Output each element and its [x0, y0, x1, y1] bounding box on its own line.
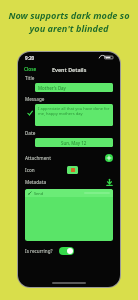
staticText: Sun, May 12 [61, 140, 87, 146]
staticText: you aren't blinded [5, 22, 133, 35]
button[interactable]: Send [25, 189, 113, 241]
staticText: Title [25, 75, 35, 81]
staticText: Mother's Day [38, 85, 66, 91]
staticText: Metadata [25, 179, 47, 185]
staticText: Send [34, 191, 44, 196]
staticText: Now supports dark mode so [5, 9, 133, 22]
button[interactable]: I appreciate all that you have done for … [35, 104, 113, 126]
staticText: Close [24, 66, 37, 73]
staticText: 9:20 [25, 55, 35, 61]
button[interactable]: Icon [25, 165, 113, 175]
button[interactable]: Sun, May 12 [35, 138, 113, 147]
button[interactable]: Close [23, 65, 38, 74]
other: Add attachment [105, 154, 113, 162]
button[interactable]: Mother's Day [35, 83, 113, 92]
staticText: Attachment [25, 155, 51, 161]
button[interactable]: Attachment [25, 152, 113, 163]
staticText: Message [25, 96, 45, 102]
staticText: Is recurring? [25, 248, 53, 254]
button[interactable]: Is recurring? [25, 245, 113, 256]
other: Download metadata [106, 179, 113, 186]
other: Verified [27, 110, 33, 116]
staticText: I appreciate all that you have done for … [38, 106, 110, 116]
other: Is recurring toggle, on [59, 247, 74, 255]
staticText: Event Details [52, 66, 87, 73]
staticText: Icon [25, 167, 35, 173]
button[interactable]: Metadata [25, 177, 113, 187]
staticText: Date [25, 130, 36, 136]
